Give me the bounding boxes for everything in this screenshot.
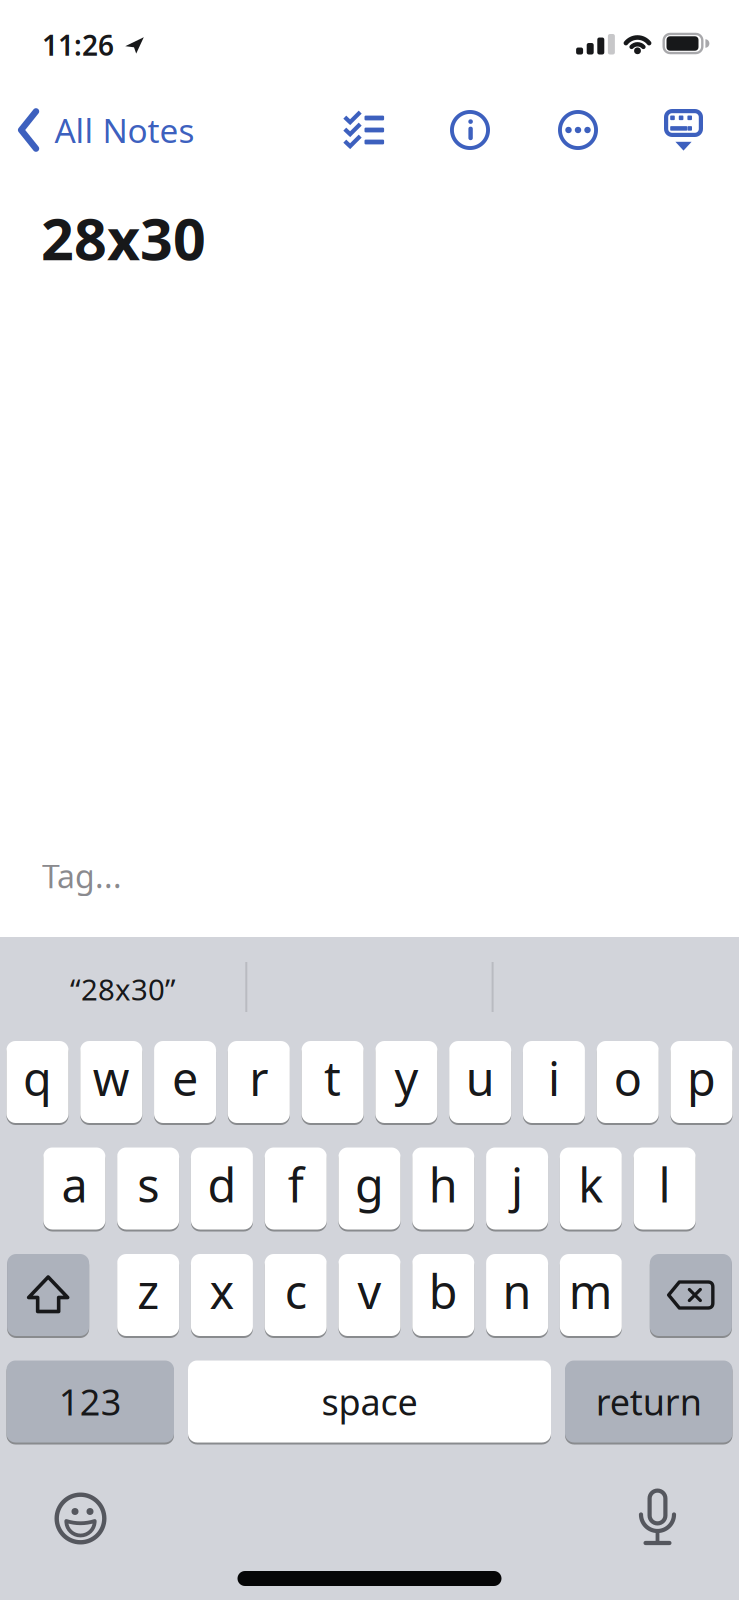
button[interactable]: h bbox=[412, 1147, 474, 1229]
button[interactable]: Delete bbox=[650, 1254, 732, 1336]
button[interactable]: 123 bbox=[6, 1360, 174, 1442]
staticText: r bbox=[249, 1047, 268, 1109]
button[interactable]: return bbox=[565, 1360, 732, 1442]
button[interactable]: k bbox=[560, 1147, 622, 1229]
button[interactable]: space bbox=[188, 1360, 551, 1442]
button[interactable]: l bbox=[634, 1147, 696, 1229]
button[interactable]: m bbox=[560, 1254, 622, 1336]
button[interactable]: v bbox=[338, 1254, 400, 1336]
button[interactable]: a bbox=[43, 1147, 105, 1229]
button[interactable]: t bbox=[302, 1041, 364, 1123]
button[interactable]: g bbox=[338, 1147, 400, 1229]
button[interactable]: c bbox=[265, 1254, 327, 1336]
staticText: b bbox=[429, 1260, 458, 1322]
staticText: d bbox=[207, 1153, 236, 1215]
staticText: a bbox=[61, 1153, 87, 1215]
staticText: i bbox=[548, 1047, 560, 1109]
staticText: “28x30” bbox=[70, 969, 176, 1008]
staticText: 11:26 bbox=[42, 26, 114, 64]
button[interactable]: All Notes, Back bbox=[0, 108, 194, 152]
button[interactable]: Dictate bbox=[637, 1487, 677, 1545]
staticText: x bbox=[209, 1260, 234, 1322]
staticText: c bbox=[285, 1260, 307, 1322]
staticText: q bbox=[23, 1047, 52, 1109]
staticText: t bbox=[324, 1047, 341, 1109]
staticText: s bbox=[137, 1153, 159, 1215]
button[interactable]: x bbox=[191, 1254, 253, 1336]
button[interactable]: p bbox=[670, 1041, 732, 1123]
staticText: u bbox=[466, 1047, 495, 1109]
staticText: y bbox=[394, 1047, 418, 1109]
staticText: w bbox=[93, 1047, 130, 1109]
button[interactable]: e bbox=[154, 1041, 216, 1123]
button[interactable]: d bbox=[191, 1147, 253, 1229]
staticText: j bbox=[511, 1153, 523, 1215]
staticText: e bbox=[172, 1047, 198, 1109]
staticText: g bbox=[355, 1153, 384, 1215]
button[interactable]: Checklist bbox=[344, 111, 384, 149]
staticText: k bbox=[578, 1153, 603, 1215]
button[interactable]: “28x30” bbox=[0, 937, 246, 1041]
staticText: space bbox=[321, 1378, 417, 1425]
staticText: 123 bbox=[59, 1378, 122, 1425]
button[interactable]: o bbox=[597, 1041, 659, 1123]
staticText: Tag... bbox=[42, 854, 122, 897]
button[interactable]: y bbox=[375, 1041, 437, 1123]
button[interactable]: s bbox=[117, 1147, 179, 1229]
staticText: l bbox=[659, 1153, 671, 1215]
button[interactable]: f bbox=[265, 1147, 327, 1229]
button[interactable]: Note info bbox=[450, 110, 490, 150]
button[interactable]: n bbox=[486, 1254, 548, 1336]
staticText: v bbox=[357, 1260, 381, 1322]
staticText: z bbox=[137, 1260, 159, 1322]
button[interactable]: i bbox=[523, 1041, 585, 1123]
button[interactable]: Emoji bbox=[54, 1492, 106, 1544]
staticText: f bbox=[288, 1153, 304, 1215]
staticText: n bbox=[503, 1260, 532, 1322]
button[interactable]: q bbox=[6, 1041, 68, 1123]
staticText: 28x30 bbox=[41, 200, 206, 276]
staticText: m bbox=[569, 1260, 613, 1322]
button[interactable]: j bbox=[486, 1147, 548, 1229]
button[interactable]: r bbox=[228, 1041, 290, 1123]
button[interactable]: w bbox=[80, 1041, 142, 1123]
staticText: All Notes bbox=[54, 108, 194, 152]
staticText: p bbox=[687, 1047, 716, 1109]
button[interactable]: Shift bbox=[7, 1254, 89, 1336]
staticText: return bbox=[596, 1378, 702, 1425]
staticText: o bbox=[614, 1047, 642, 1109]
button[interactable]: More bbox=[558, 110, 598, 150]
staticText: h bbox=[429, 1153, 458, 1215]
button[interactable]: Dismiss keyboard bbox=[655, 103, 711, 159]
button[interactable]: z bbox=[117, 1254, 179, 1336]
button[interactable]: b bbox=[412, 1254, 474, 1336]
button[interactable]: u bbox=[449, 1041, 511, 1123]
